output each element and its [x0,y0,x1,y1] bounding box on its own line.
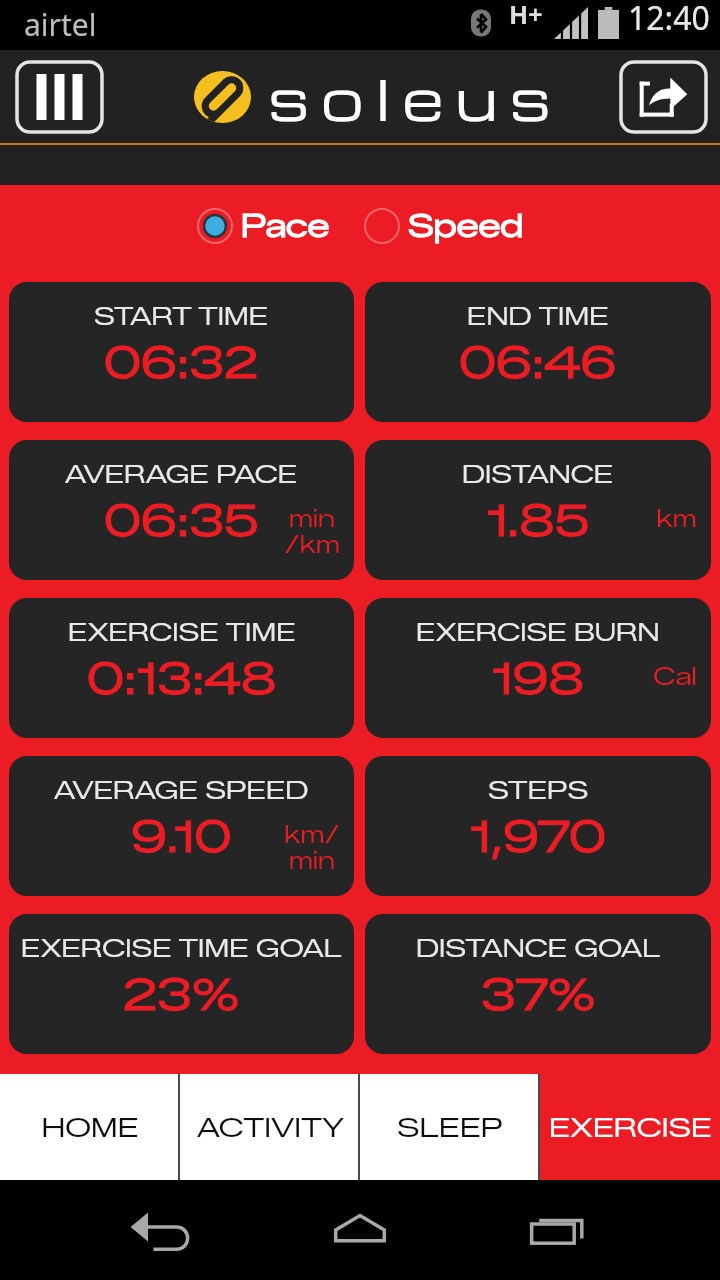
button[interactable]: SLEEP [360,1074,540,1180]
staticText: Pace [241,207,330,245]
staticText: soleus [268,60,563,135]
staticText: 1,970 [470,811,607,863]
staticText: STEPS [488,775,589,805]
button[interactable]: AVERAGE SPEED [9,756,354,896]
staticText: START TIME [94,301,269,331]
button[interactable]: Menu [17,62,102,132]
button[interactable]: Share [621,62,706,132]
staticText: min /km [284,504,340,559]
staticText: 06:32 [104,337,259,389]
staticText: Speed [408,207,524,245]
button[interactable]: ACTIVITY [180,1074,360,1180]
staticText: 37% [481,969,596,1021]
staticText: EXERCISE BURN [416,617,660,647]
button[interactable]: STEPS [365,756,711,896]
staticText: 12:40 [628,0,710,40]
staticText: ACTIVITY [197,1111,344,1144]
staticText: END TIME [467,301,609,331]
staticText: 9.10 [131,811,232,863]
button[interactable]: Home [322,1200,398,1260]
button[interactable]: HOME [0,1074,180,1180]
button[interactable]: EXERCISE BURN [365,598,711,738]
button[interactable]: START TIME [9,282,354,422]
button[interactable]: AVERAGE PACE [9,440,354,580]
button[interactable]: DISTANCE GOAL [365,914,711,1054]
staticText: 198 [492,653,585,705]
staticText: EXERCISE TIME GOAL [21,933,342,963]
staticText: DISTANCE [462,459,614,489]
staticText: DISTANCE GOAL [416,933,661,963]
button[interactable]: EXERCISE TIME GOAL [9,914,354,1054]
staticText: airtel [24,4,97,45]
staticText: 1.85 [487,495,590,547]
staticText: SLEEP [397,1111,503,1144]
staticText: AVERAGE PACE [65,459,298,489]
button[interactable]: DISTANCE [365,440,711,580]
staticText: EXERCISE [549,1111,712,1144]
staticText: HOME [41,1111,139,1144]
button[interactable]: Back [123,1200,199,1260]
button[interactable]: Pace [197,207,330,245]
button[interactable]: Speed [364,207,524,245]
button[interactable]: Recent apps [521,1200,597,1260]
staticText: 23% [123,969,240,1021]
button[interactable]: END TIME [365,282,711,422]
button[interactable]: EXERCISE TIME [9,598,354,738]
staticText: H+ [509,0,543,31]
button[interactable]: EXERCISE [540,1074,720,1180]
staticText: km [656,504,697,533]
staticText: 06:35 [104,495,259,547]
staticText: 06:46 [459,337,617,389]
staticText: Cal [653,662,697,691]
staticText: km/ min [284,820,340,875]
staticText: 0:13:48 [87,653,277,705]
staticText: EXERCISE TIME [68,617,296,647]
staticText: AVERAGE SPEED [54,775,309,805]
